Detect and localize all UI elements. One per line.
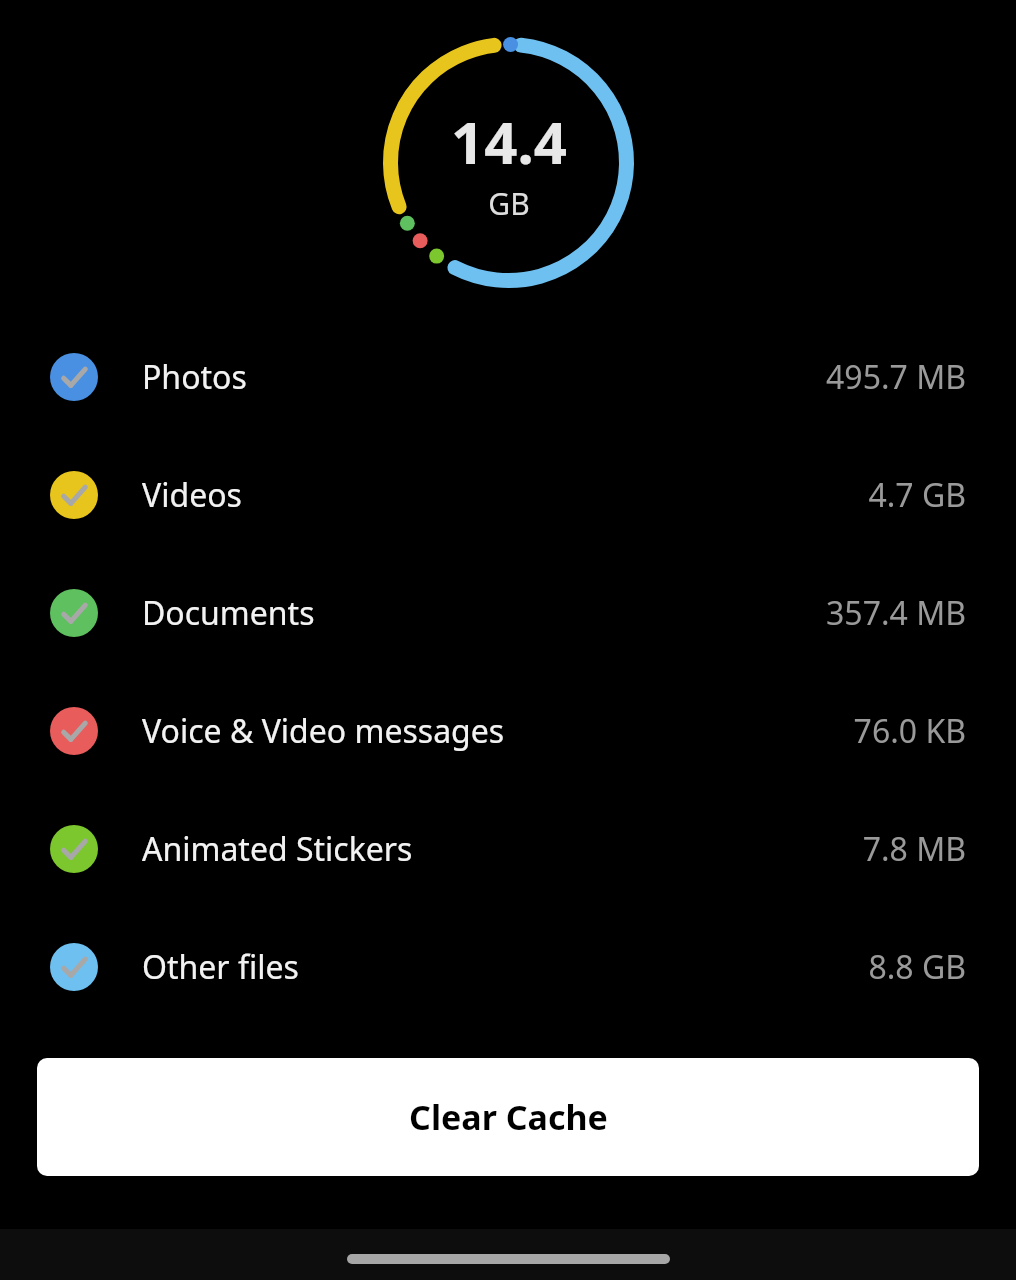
staticText: 76.0 KB — [853, 709, 966, 753]
staticText: 14.4 — [451, 102, 567, 181]
button[interactable]: Photos — [0, 318, 1016, 436]
other: Home — [347, 1254, 670, 1264]
staticText: Photos — [142, 355, 826, 399]
staticText: Documents — [142, 591, 826, 635]
staticText: GB — [488, 183, 530, 224]
staticText: Voice & Video messages — [142, 709, 853, 753]
staticText: 357.4 MB — [826, 591, 966, 635]
staticText: 495.7 MB — [826, 355, 966, 399]
staticText: 7.8 MB — [862, 827, 966, 871]
staticText: 8.8 GB — [868, 945, 966, 989]
staticText: Other files — [142, 945, 868, 989]
staticText: 4.7 GB — [868, 473, 966, 517]
button[interactable]: Videos — [0, 436, 1016, 554]
staticText: Clear Cache — [409, 1094, 608, 1140]
button[interactable]: Animated Stickers — [0, 790, 1016, 908]
staticText: Animated Stickers — [142, 827, 862, 871]
staticText: Videos — [142, 473, 868, 517]
button[interactable]: Voice & Video messages — [0, 672, 1016, 790]
button[interactable]: Other files — [0, 908, 1016, 1026]
button[interactable]: Clear Cache — [37, 1058, 979, 1176]
button[interactable]: Documents — [0, 554, 1016, 672]
